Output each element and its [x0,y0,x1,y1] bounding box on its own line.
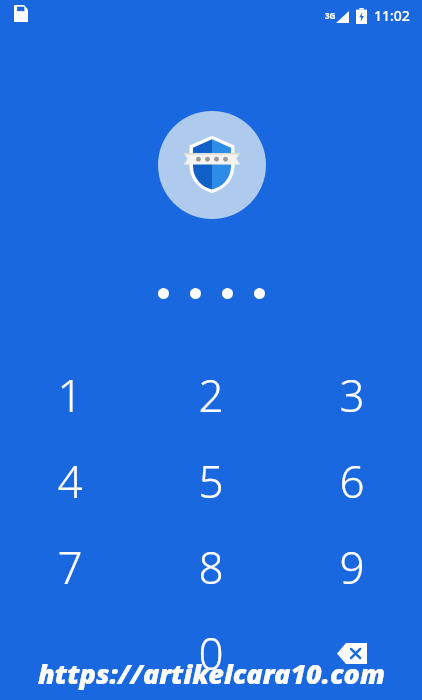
staticText: 3G [325,10,336,21]
staticText: 8 [198,537,224,597]
staticText: 0 [198,623,224,683]
staticText: 3 [339,365,365,425]
staticText: 11:02 [374,6,410,25]
button[interactable]: 4 [0,438,140,524]
staticText: 5 [198,451,224,511]
button[interactable]: 5 [140,438,281,524]
button[interactable]: 3 [281,352,422,438]
staticText: 6 [339,451,365,511]
button[interactable]: 8 [140,524,281,610]
staticText: 9 [339,537,365,597]
button[interactable]: 2 [140,352,281,438]
staticText: 7 [57,537,83,597]
staticText: 2 [198,365,224,425]
button[interactable]: 1 [0,352,140,438]
staticText: 4 [57,451,83,511]
button[interactable]: 9 [281,524,422,610]
button[interactable]: Backspace [281,610,422,696]
staticText: 1 [57,365,83,425]
staticText: https://artikelcara10.com [38,655,385,692]
button[interactable]: 6 [281,438,422,524]
button[interactable]: 0 [140,610,281,696]
button[interactable]: 7 [0,524,140,610]
